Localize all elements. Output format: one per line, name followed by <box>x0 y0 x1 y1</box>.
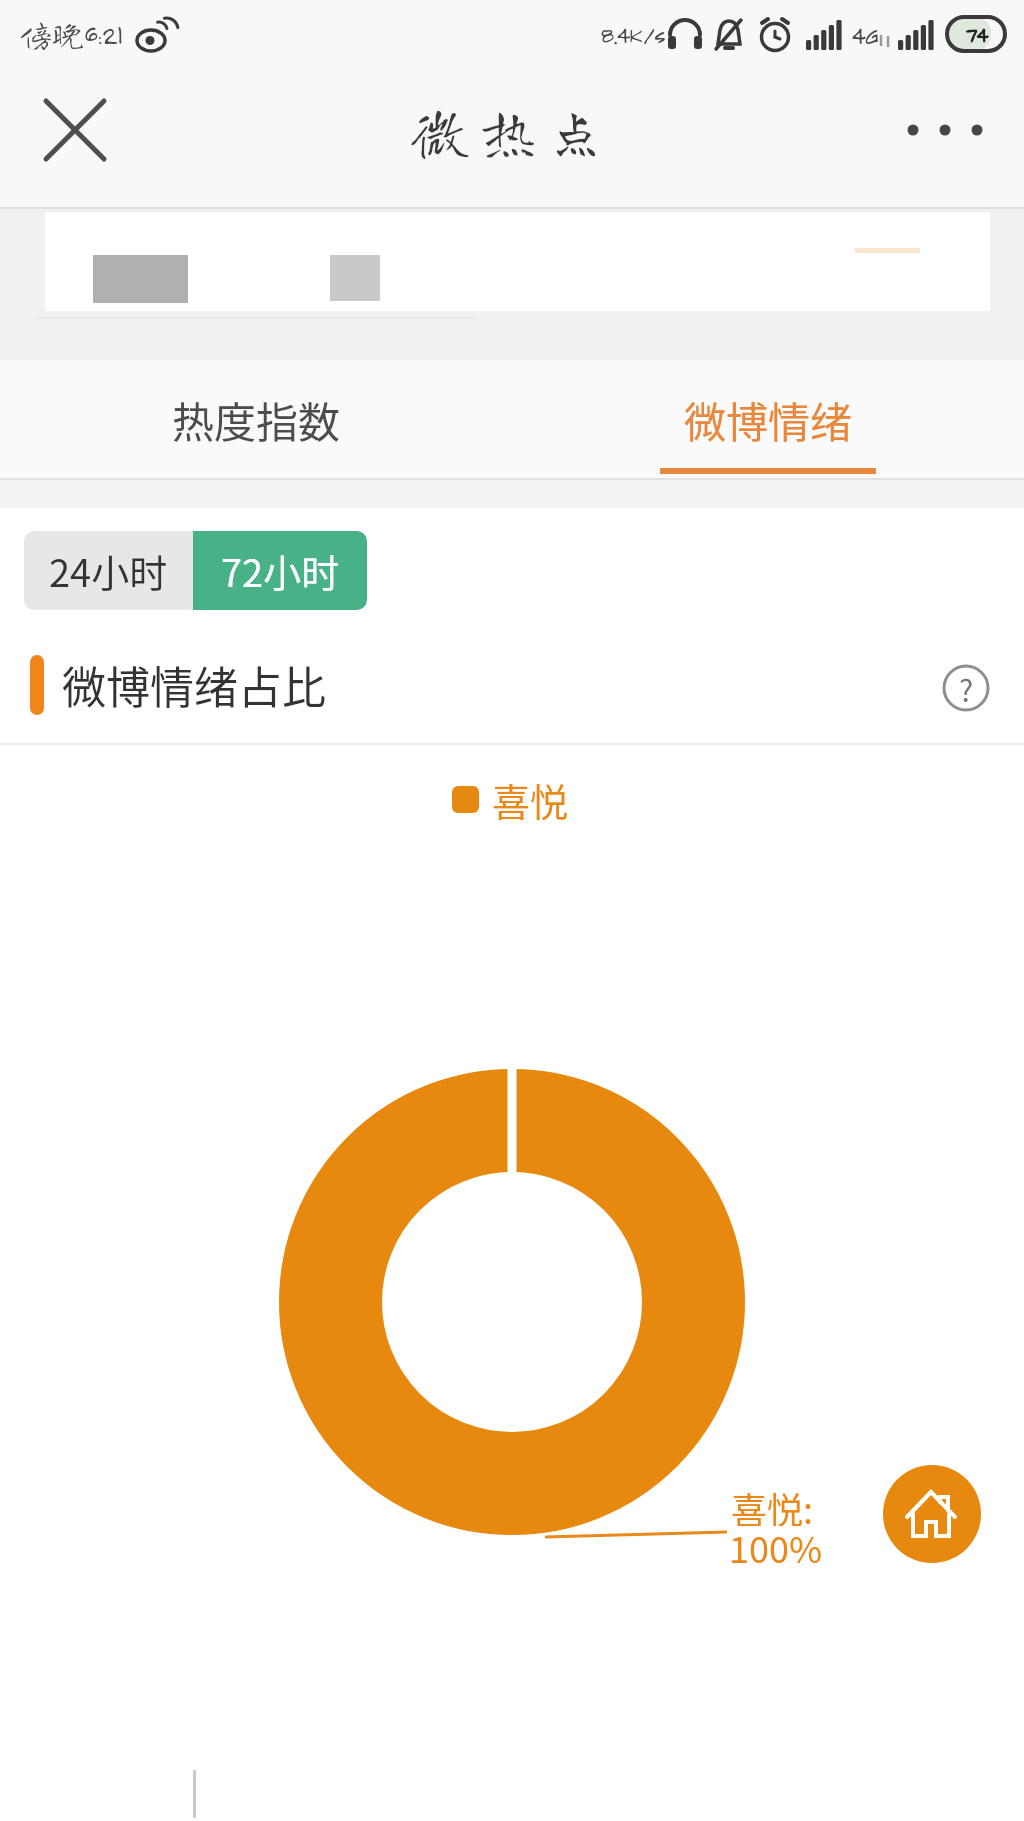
staticText: 喜悦: <box>731 1482 814 1526</box>
button[interactable] <box>45 212 990 311</box>
button[interactable]: 72小时 <box>193 531 367 610</box>
staticText: 72小时 <box>221 543 340 598</box>
staticText: 74 <box>965 21 987 47</box>
button[interactable] <box>883 1465 981 1563</box>
staticText: 傍晚6:21 <box>20 18 122 50</box>
button[interactable]: 24小时 <box>24 531 193 610</box>
staticText: 8.4K/s <box>600 19 665 49</box>
staticText: 热度指数 <box>172 389 341 450</box>
button[interactable] <box>895 85 995 175</box>
staticText: 100% <box>729 1521 823 1565</box>
staticText: 喜悦 <box>492 772 569 827</box>
staticText: 微热点 <box>410 100 614 160</box>
button[interactable]: 微博情绪 <box>512 360 1024 478</box>
staticText: 微博情绪 <box>684 389 853 450</box>
staticText: 4G <box>851 19 878 50</box>
staticText: ? <box>959 667 974 710</box>
button[interactable]: ? <box>941 663 991 713</box>
staticText: 24小时 <box>49 543 168 598</box>
staticText: 微博情绪占比 <box>62 653 326 717</box>
button[interactable]: 热度指数 <box>0 360 512 478</box>
button[interactable] <box>30 85 120 175</box>
